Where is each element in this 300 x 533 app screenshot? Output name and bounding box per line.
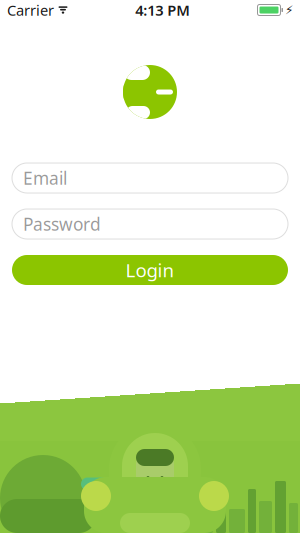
button[interactable]: Email — [12, 163, 288, 193]
staticText: Password — [23, 212, 101, 235]
staticText: ⚡︎ — [285, 3, 293, 17]
staticText: Login — [125, 258, 174, 282]
button[interactable]: Password — [12, 209, 288, 239]
staticText: 4:13 PM — [135, 0, 190, 20]
button[interactable]: Login — [12, 255, 288, 285]
staticText: Carrier — [7, 0, 54, 20]
staticText: Email — [23, 166, 67, 189]
